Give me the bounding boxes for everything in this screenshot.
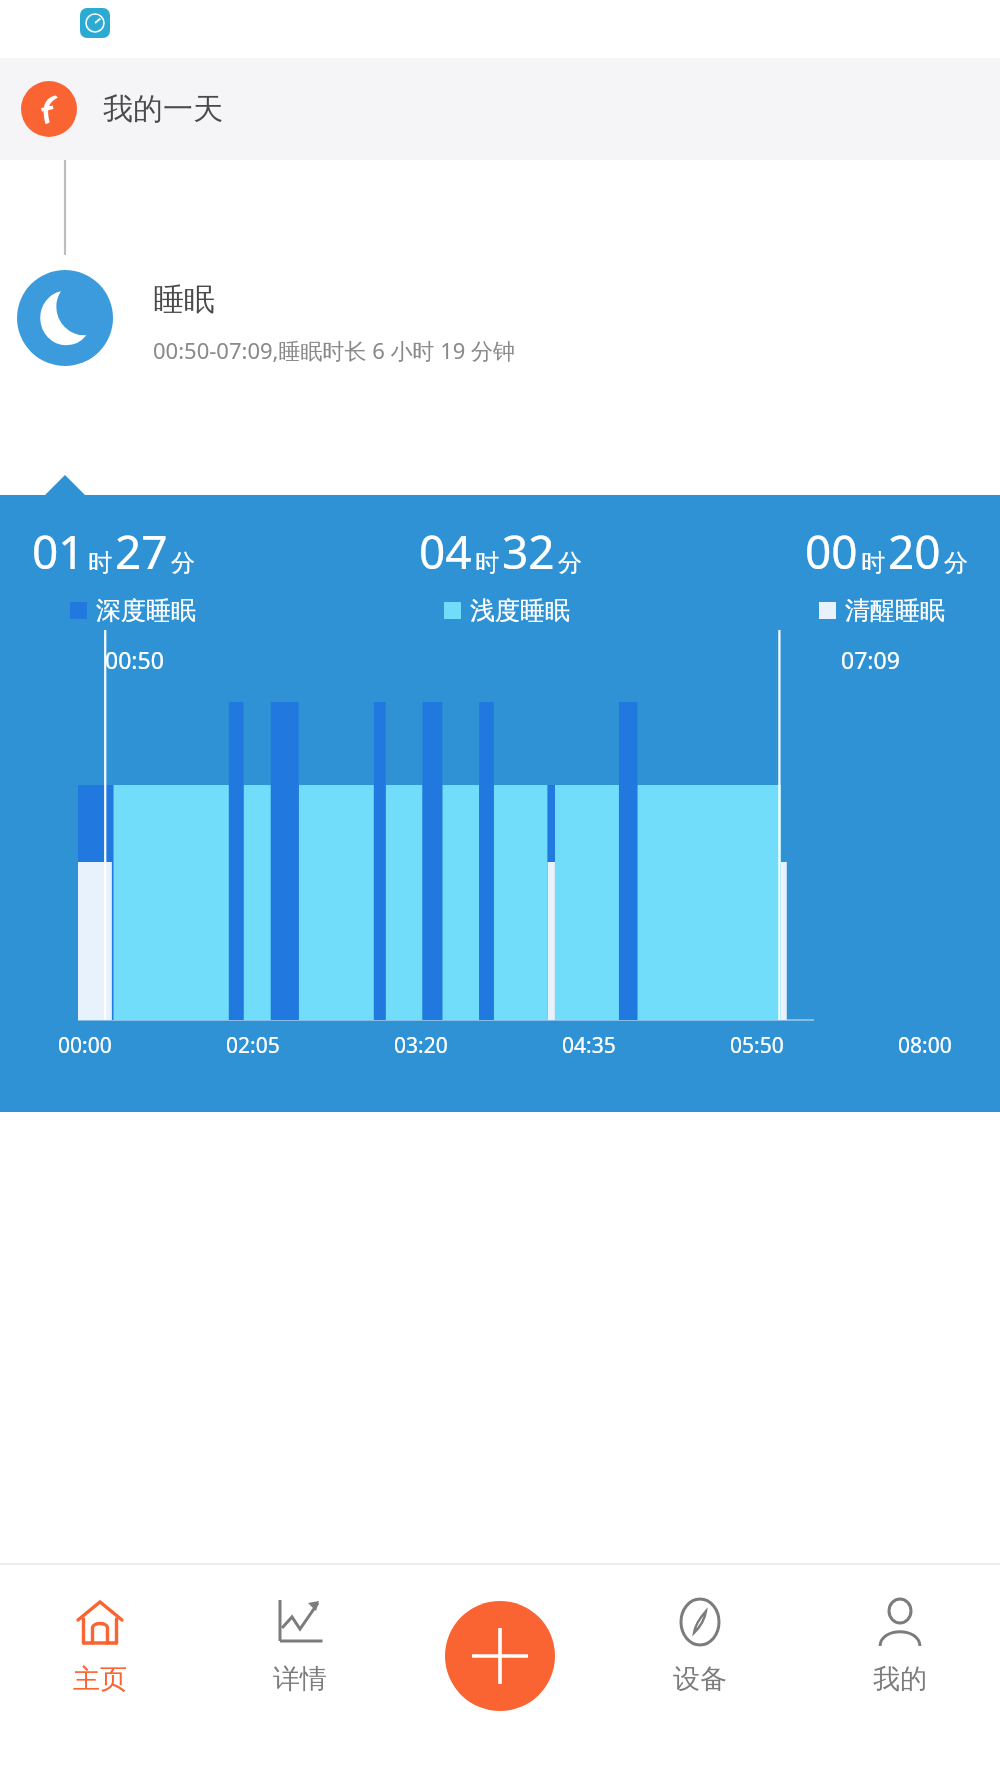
staticText: 00 — [805, 520, 858, 583]
staticText: 深度睡眠 — [96, 595, 196, 626]
staticText: 04 — [419, 520, 472, 583]
staticText: 08:00 — [898, 1031, 952, 1060]
staticText: 清醒睡眠 — [845, 595, 945, 626]
staticText: 设备 — [673, 1662, 727, 1696]
button[interactable]: 我的一天 — [0, 58, 1000, 160]
staticText: 时 — [475, 548, 499, 578]
staticText: 02:05 — [226, 1031, 280, 1060]
button[interactable]: 详情 — [200, 1594, 400, 1777]
button[interactable]: Add — [445, 1601, 555, 1711]
staticText: 05:50 — [730, 1031, 784, 1060]
staticText: 分 — [171, 548, 195, 578]
button[interactable]: 睡眠 — [0, 160, 1000, 475]
staticText: 分 — [558, 548, 582, 578]
staticText: 07:09 — [841, 644, 900, 675]
staticText: 04:35 — [562, 1031, 616, 1060]
staticText: 主页 — [73, 1662, 127, 1696]
staticText: 03:20 — [394, 1031, 448, 1060]
button[interactable]: 设备 — [600, 1594, 800, 1777]
staticText: 分 — [944, 548, 968, 578]
button[interactable]: 主页 — [0, 1594, 200, 1777]
staticText: 浅度睡眠 — [470, 595, 570, 626]
button[interactable]: 我的 — [800, 1594, 1000, 1777]
staticText: 00:50-07:09,睡眠时长 6 小时 19 分钟 — [153, 335, 516, 365]
staticText: 详情 — [273, 1662, 327, 1696]
staticText: 00:50 — [105, 644, 164, 675]
staticText: 睡眠 — [153, 280, 215, 319]
staticText: 27 — [115, 520, 168, 583]
staticText: 00:00 — [58, 1031, 112, 1060]
staticText: 我的 — [873, 1662, 927, 1696]
staticText: 20 — [888, 520, 941, 583]
staticText: 时 — [861, 548, 885, 578]
staticText: 我的一天 — [103, 90, 223, 128]
staticText: 32 — [502, 520, 555, 583]
staticText: 时 — [88, 548, 112, 578]
staticText: 01 — [32, 520, 85, 583]
